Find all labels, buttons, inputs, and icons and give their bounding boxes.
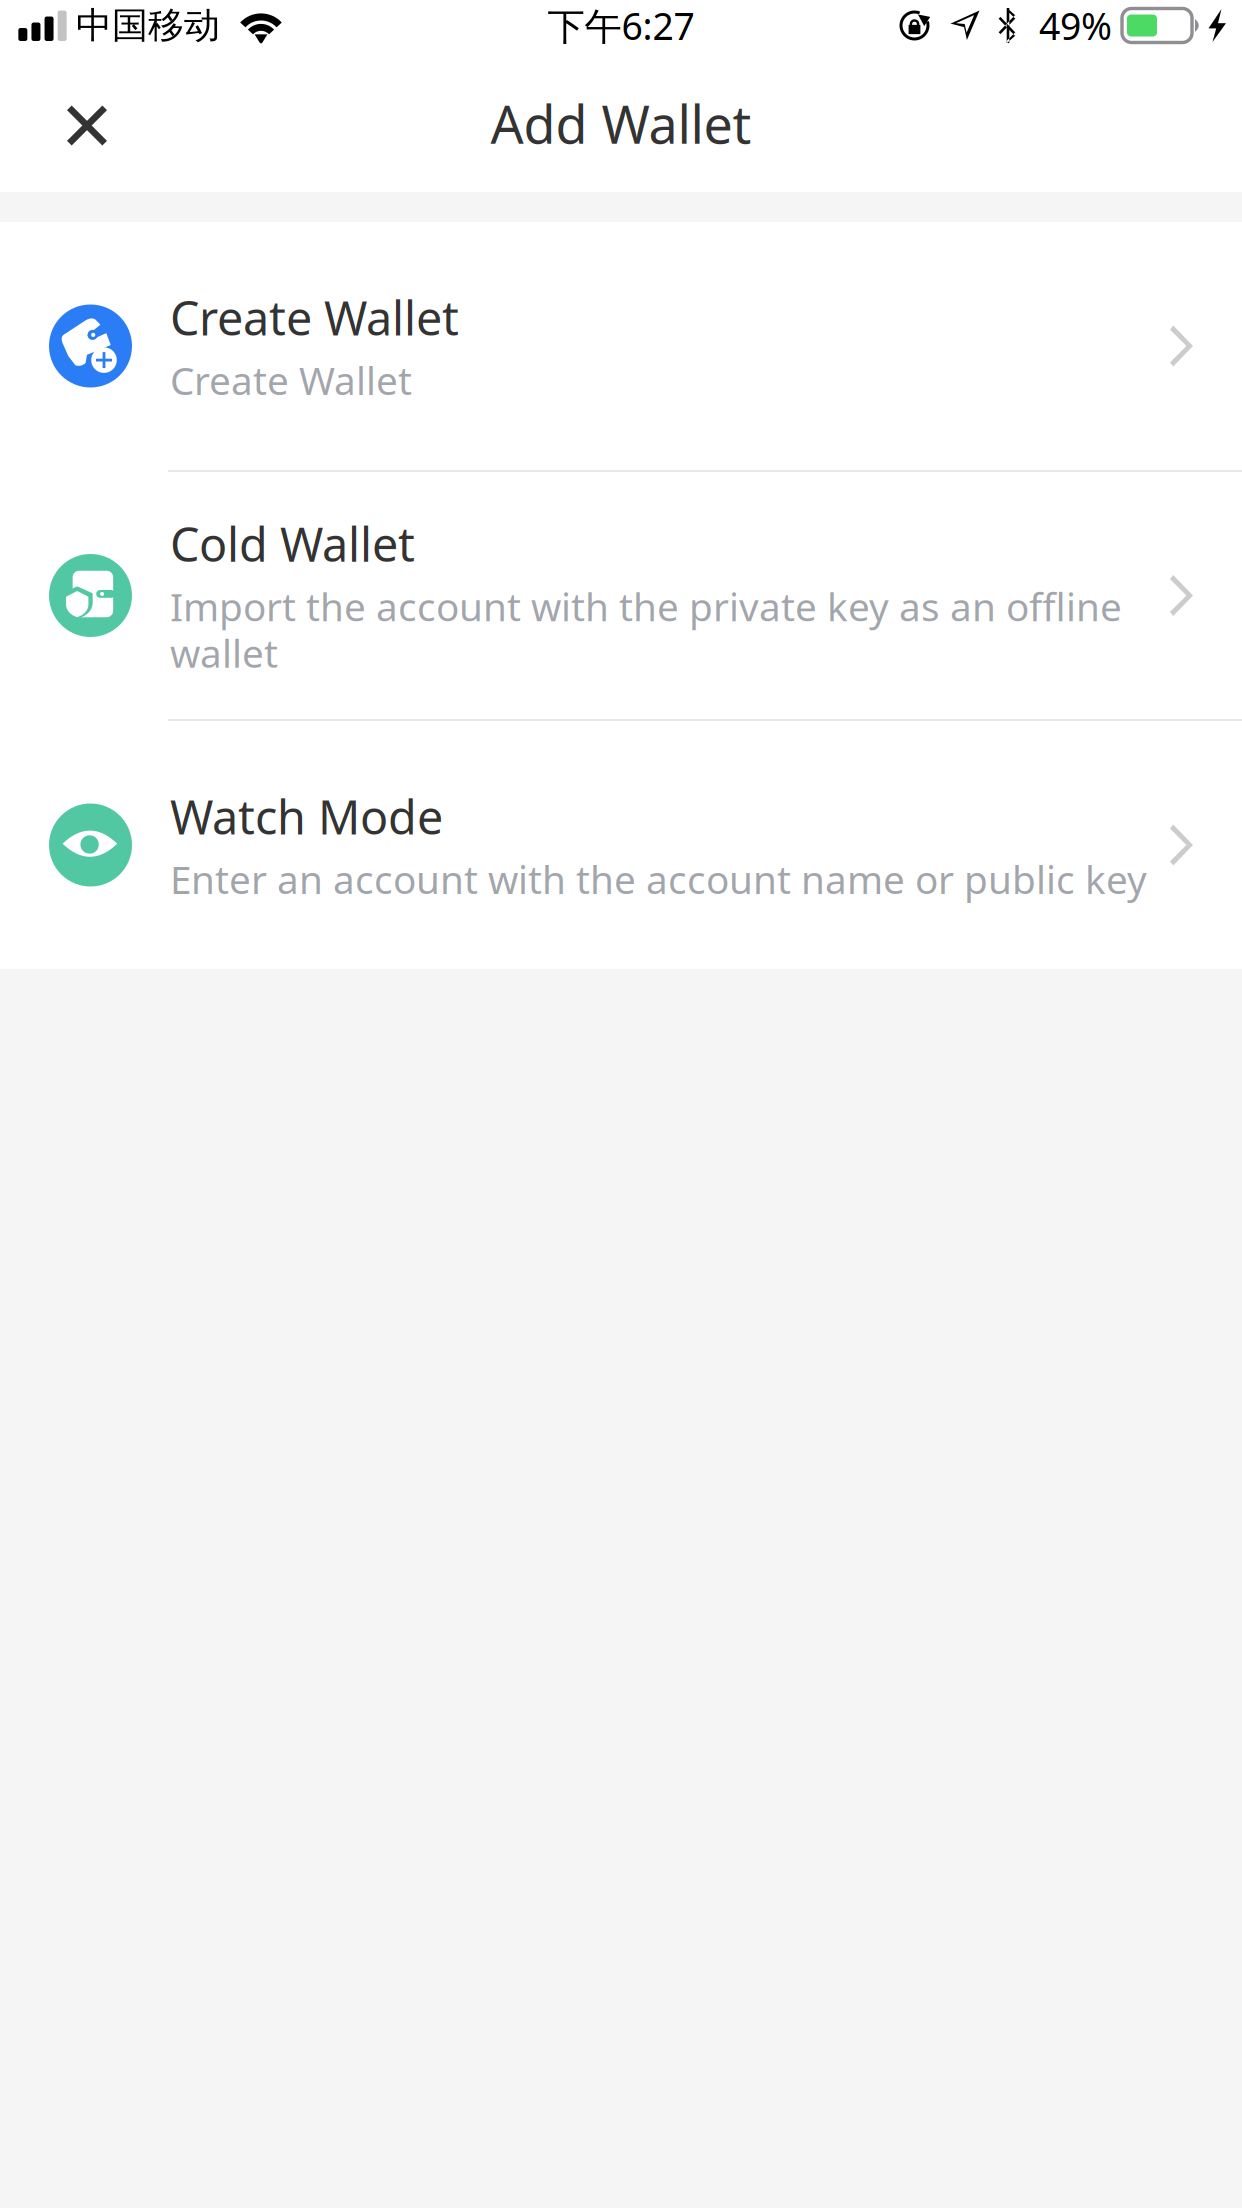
staticText: Import the account with the private key …	[170, 581, 1122, 678]
staticText: 49%	[1039, 1, 1112, 50]
staticText: Cold Wallet	[170, 513, 415, 575]
staticText: Add Wallet	[490, 89, 751, 158]
button[interactable]: Watch Mode	[0, 721, 1242, 969]
staticText: 下午6:27	[547, 1, 694, 50]
staticText: Create Wallet	[170, 286, 459, 348]
button[interactable]: Create Wallet	[0, 222, 1242, 470]
staticText: Watch Mode	[170, 785, 443, 847]
button[interactable]: Cold Wallet	[0, 472, 1242, 719]
staticText: 中国移动	[76, 3, 220, 48]
button[interactable]: Close	[43, 81, 131, 169]
staticText: Enter an account with the account name o…	[170, 853, 1147, 905]
staticText: Create Wallet	[170, 354, 412, 406]
